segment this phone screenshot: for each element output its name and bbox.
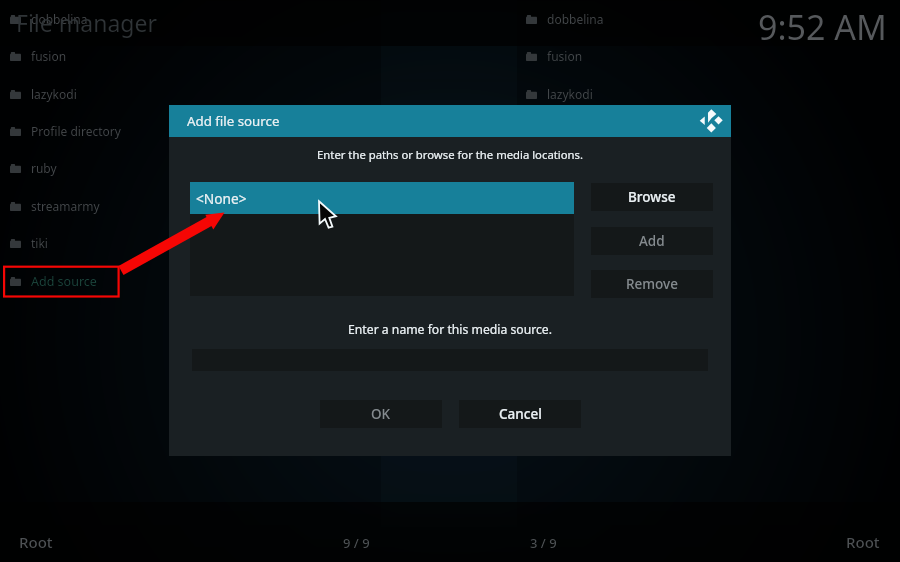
staticText: Add source: [31, 273, 97, 290]
staticText: OK: [371, 405, 391, 423]
staticText: dobbelina: [31, 11, 88, 27]
button[interactable]: Kodi: [698, 108, 722, 134]
staticText: 9:52 AM: [758, 4, 887, 50]
button[interactable]: dobbelina: [10, 8, 88, 30]
button[interactable]: Add source: [10, 270, 97, 292]
staticText: Add file source: [187, 112, 280, 130]
button[interactable]: Add: [591, 227, 713, 255]
staticText: Root: [846, 532, 880, 552]
button[interactable]: Remove: [591, 270, 713, 298]
staticText: Cancel: [499, 405, 542, 423]
staticText: fusion: [547, 48, 583, 64]
button[interactable]: streamarmy: [10, 195, 100, 217]
staticText: tiki: [31, 235, 48, 251]
button[interactable]: ruby: [10, 157, 57, 179]
button[interactable]: dobbelina: [526, 8, 604, 30]
staticText: Root: [19, 532, 53, 552]
staticText: Enter a name for this media source.: [169, 321, 731, 338]
staticText: Profile directory: [31, 123, 121, 139]
staticText: Browse: [628, 188, 676, 206]
button[interactable]: Profile directory: [10, 120, 121, 142]
staticText: 9 / 9: [343, 534, 370, 552]
staticText: fusion: [31, 48, 67, 64]
button[interactable]: lazykodi: [526, 83, 593, 105]
staticText: streamarmy: [31, 198, 100, 214]
staticText: lazykodi: [547, 86, 593, 102]
staticText: 3 / 9: [530, 534, 557, 552]
button[interactable]: fusion: [526, 45, 583, 67]
staticText: <None>: [196, 189, 247, 208]
staticText: Add: [639, 232, 665, 250]
button[interactable]: OK: [320, 400, 442, 428]
staticText: Remove: [626, 275, 678, 293]
staticText: Enter the paths or browse for the media …: [169, 147, 731, 162]
button[interactable]: lazykodi: [10, 83, 77, 105]
button[interactable]: Browse: [591, 183, 713, 211]
button[interactable]: Cancel: [459, 400, 581, 428]
button[interactable]: tiki: [10, 232, 48, 254]
button[interactable]: <None>: [190, 182, 574, 214]
button[interactable]: fusion: [10, 45, 67, 67]
button[interactable]: Add file source: [169, 105, 731, 137]
staticText: dobbelina: [547, 11, 604, 27]
staticText: File manager: [16, 7, 157, 38]
staticText: lazykodi: [31, 86, 77, 102]
staticText: ruby: [31, 160, 57, 176]
